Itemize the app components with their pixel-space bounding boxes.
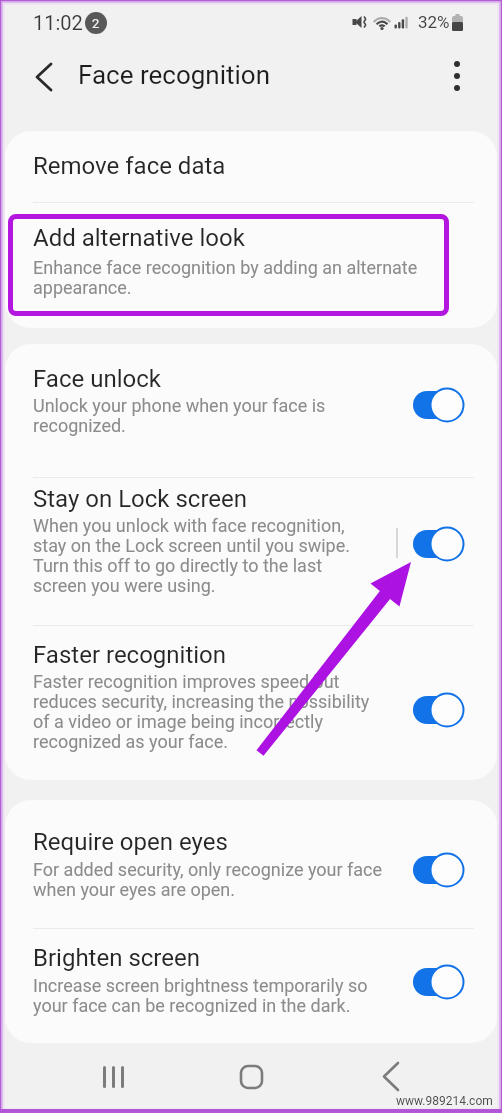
staticText: Enhance face recognition by adding an al…	[33, 257, 418, 298]
button[interactable]	[227, 1054, 275, 1100]
button[interactable]	[5, 202, 497, 328]
staticText: 11:02	[33, 11, 83, 34]
button[interactable]	[5, 928, 497, 1043]
staticText: Unlock your phone when your face is reco…	[33, 395, 326, 436]
staticText: Increase screen brightness temporarily s…	[33, 975, 368, 1016]
button[interactable]	[411, 525, 467, 563]
staticText: 2	[92, 16, 100, 31]
staticText: When you unlock with face recognition, s…	[33, 515, 351, 596]
staticText: For added security, only recognize your …	[33, 859, 383, 900]
button[interactable]	[88, 1054, 136, 1100]
staticText: Add alternative look	[33, 224, 245, 252]
staticText: Stay on Lock screen	[33, 485, 248, 513]
staticText: Faster recognition	[33, 641, 227, 669]
staticText: Require open eyes	[33, 828, 228, 856]
button[interactable]	[5, 131, 497, 202]
staticText: Brighten screen	[33, 944, 200, 972]
staticText: 32%	[418, 12, 450, 32]
button[interactable]	[411, 691, 467, 729]
button[interactable]	[411, 963, 467, 1001]
button[interactable]	[5, 477, 497, 625]
staticText: Face unlock	[33, 365, 161, 393]
button[interactable]	[24, 58, 64, 96]
staticText: Remove face data	[33, 152, 226, 180]
button[interactable]	[5, 625, 497, 780]
staticText: www.989214.com	[396, 1094, 493, 1108]
staticText: Face recognition	[78, 60, 271, 90]
button[interactable]	[438, 57, 476, 95]
button[interactable]	[411, 386, 467, 424]
button[interactable]	[368, 1054, 416, 1100]
button[interactable]	[5, 344, 497, 477]
button[interactable]	[5, 800, 497, 928]
staticText: Faster recognition improves speed but re…	[33, 671, 370, 752]
button[interactable]	[411, 851, 467, 889]
